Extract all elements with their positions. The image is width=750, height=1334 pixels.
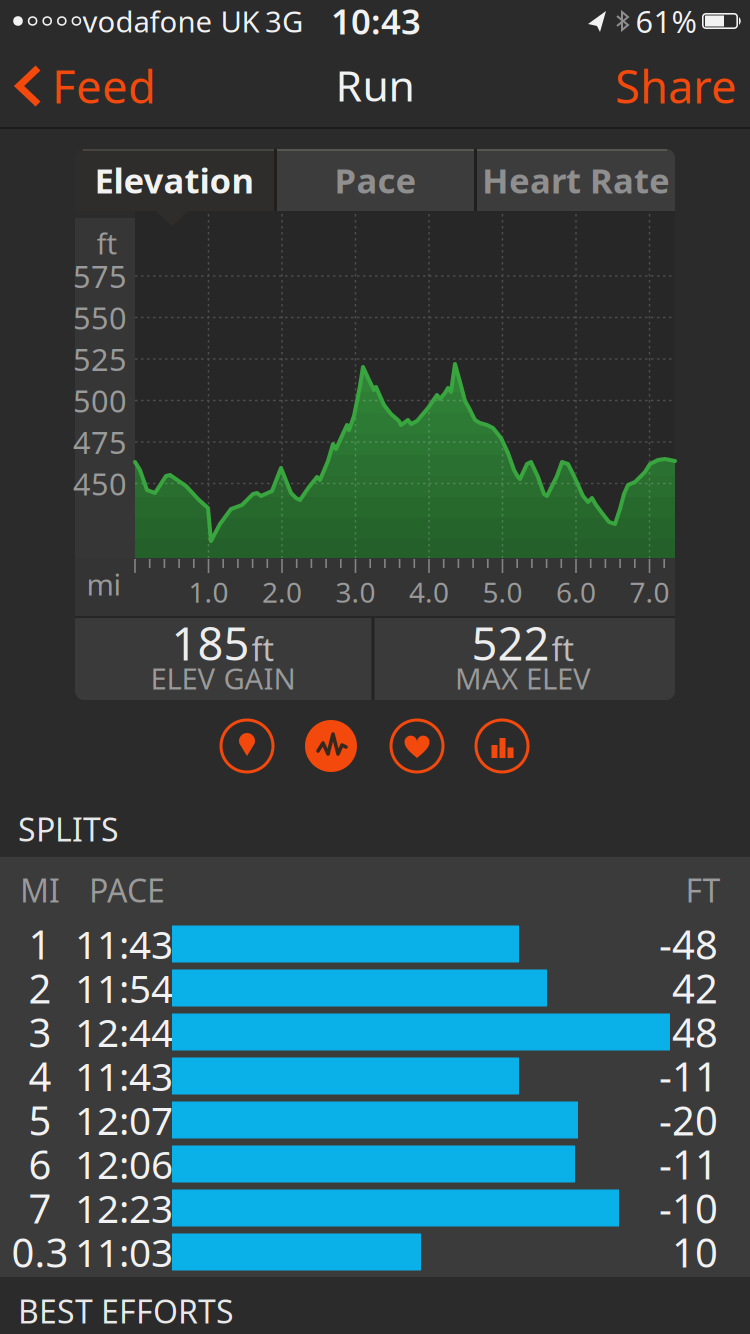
staticText: FT <box>685 869 720 911</box>
staticText: 11:54 <box>75 962 173 1014</box>
staticText: ft <box>96 223 117 262</box>
staticText: Elevation <box>94 157 254 203</box>
staticText: 48 <box>672 1005 718 1058</box>
staticText: ft <box>551 628 574 670</box>
staticText: 11:43 <box>75 918 173 970</box>
staticText: SPLITS <box>18 808 119 850</box>
staticText: vodafone UK <box>82 1 259 40</box>
staticText: 7.0 <box>629 573 669 611</box>
staticText: Pace <box>334 157 416 203</box>
staticText: 12:06 <box>75 1138 173 1190</box>
staticText: Run <box>335 57 414 113</box>
staticText: 1 <box>28 917 51 970</box>
staticText: 5.0 <box>482 573 522 611</box>
staticText: 0.3 <box>11 1225 68 1278</box>
staticText: Heart Rate <box>482 157 670 203</box>
staticText: 11:03 <box>75 1226 173 1278</box>
staticText: 500 <box>73 380 127 421</box>
staticText: 550 <box>73 297 127 338</box>
staticText: 4.0 <box>409 573 449 611</box>
staticText: 525 <box>73 339 127 379</box>
staticText: 6 <box>28 1137 51 1190</box>
button[interactable]: Elevation <box>75 149 274 211</box>
staticText: 1.0 <box>188 573 228 611</box>
staticText: 7 <box>28 1181 51 1234</box>
staticText: ft <box>251 628 274 670</box>
staticText: 5 <box>28 1093 51 1146</box>
staticText: -11 <box>659 1137 718 1190</box>
staticText: 522 <box>471 613 549 673</box>
staticText: 10:43 <box>331 0 421 44</box>
staticText: 12:07 <box>75 1094 173 1146</box>
button[interactable]: Map <box>221 720 273 772</box>
staticText: 3.0 <box>335 573 375 611</box>
staticText: MI <box>20 869 60 911</box>
staticText: 11:43 <box>75 1050 173 1102</box>
staticText: 3G <box>265 1 303 40</box>
button[interactable]: Heart Rate <box>477 149 675 211</box>
button[interactable]: Feed <box>14 56 156 116</box>
button[interactable]: Analysis <box>305 720 357 772</box>
staticText: 61% <box>635 1 696 41</box>
button[interactable]: Share <box>606 56 746 116</box>
staticText: 185 <box>171 613 249 673</box>
staticText: MAX ELEV <box>455 658 591 697</box>
staticText: Feed <box>52 56 156 116</box>
staticText: mi <box>86 564 121 603</box>
staticText: 6.0 <box>556 573 596 611</box>
staticText: 12:23 <box>75 1182 173 1234</box>
staticText: 10 <box>672 1225 718 1278</box>
staticText: -10 <box>659 1181 718 1234</box>
button[interactable]: Splits <box>476 720 528 772</box>
staticText: BEST EFFORTS <box>18 1290 234 1332</box>
staticText: 475 <box>73 422 127 462</box>
staticText: 12:44 <box>75 1006 173 1058</box>
staticText: 4 <box>28 1049 51 1102</box>
staticText: 575 <box>73 256 127 296</box>
staticText: -20 <box>659 1093 718 1146</box>
staticText: PACE <box>89 869 165 911</box>
staticText: 42 <box>672 961 718 1014</box>
staticText: ELEV GAIN <box>150 658 295 697</box>
staticText: -48 <box>659 917 718 970</box>
staticText: Share <box>615 56 737 116</box>
staticText: 450 <box>73 463 127 504</box>
staticText: -11 <box>659 1049 718 1102</box>
staticText: 2 <box>28 961 51 1014</box>
staticText: 2.0 <box>262 573 302 611</box>
button[interactable]: Pace <box>276 149 475 211</box>
button[interactable]: Heart rate <box>391 720 443 772</box>
staticText: 3 <box>28 1005 51 1058</box>
